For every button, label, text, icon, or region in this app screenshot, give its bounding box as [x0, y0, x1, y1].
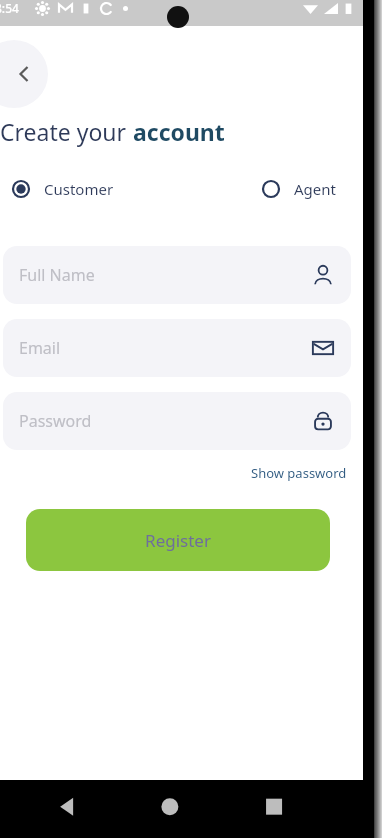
button[interactable]: Email [3, 319, 351, 377]
other: Email [312, 337, 334, 359]
button[interactable]: Back [0, 40, 48, 108]
button[interactable]: Show password [247, 460, 351, 486]
staticText: Create your [0, 116, 133, 147]
staticText: Customer [44, 179, 114, 199]
button[interactable]: Customer [0, 173, 132, 205]
button[interactable]: Full Name [3, 246, 351, 304]
button[interactable]: Register [26, 509, 330, 571]
other: Password [312, 410, 334, 432]
button[interactable]: Password [3, 392, 351, 450]
staticText: Agent [294, 179, 336, 199]
staticText: Email [19, 337, 61, 359]
staticText: Full Name [19, 264, 95, 286]
other: Name [312, 264, 334, 286]
staticText: Show password [251, 464, 347, 482]
staticText: 8:54 [0, 0, 19, 16]
staticText: account [133, 116, 225, 147]
staticText: Password [19, 410, 92, 432]
button[interactable]: Agent [244, 173, 354, 205]
staticText: Register [145, 529, 211, 552]
